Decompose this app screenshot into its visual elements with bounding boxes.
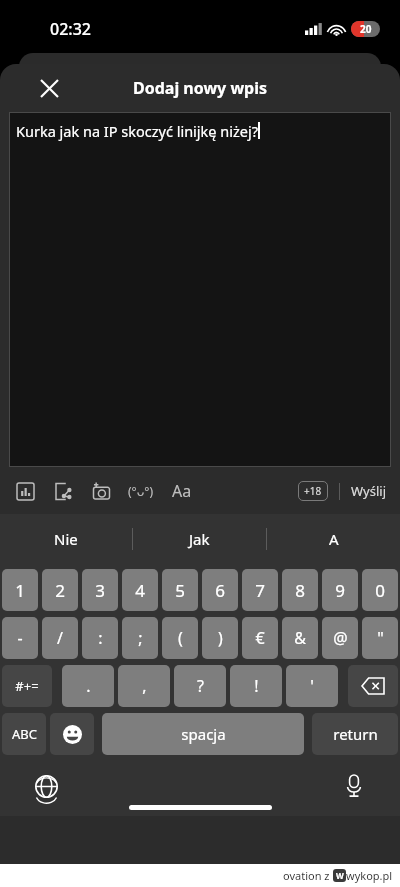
button[interactable]: Emoji [50, 713, 94, 755]
staticText: 8 [295, 579, 305, 602]
button[interactable]: € [242, 617, 278, 659]
button[interactable]: 7 [242, 569, 278, 611]
staticText: ' [310, 675, 314, 697]
button[interactable]: ? [174, 665, 226, 707]
staticText: 2 [55, 579, 65, 602]
staticText: 20 [360, 22, 372, 36]
button[interactable]: : [82, 617, 118, 659]
staticText: Aa [172, 480, 192, 502]
button[interactable]: ; [122, 617, 158, 659]
staticText: 7 [255, 579, 265, 602]
staticText: W [336, 870, 344, 881]
button[interactable]: Nie [0, 514, 132, 564]
button[interactable]: (°ᴗ°) [124, 480, 158, 502]
button[interactable]: @ [322, 617, 358, 659]
button[interactable]: Aparat [89, 479, 113, 503]
button[interactable]: , [118, 665, 170, 707]
button[interactable]: Dyktowanie [336, 768, 372, 804]
button[interactable]: +18 [298, 481, 328, 501]
staticText: 0 [375, 579, 385, 602]
button[interactable]: / [42, 617, 78, 659]
staticText: ( [178, 627, 183, 649]
staticText: 4 [135, 579, 145, 602]
button[interactable]: Kurka jak na IP skoczyć linijkę niżej? [9, 112, 391, 467]
button[interactable]: ( [162, 617, 198, 659]
button[interactable]: & [282, 617, 318, 659]
button[interactable]: ABC [2, 713, 46, 755]
button[interactable]: #+= [2, 665, 52, 707]
staticText: ? [197, 675, 204, 697]
button[interactable]: . [62, 665, 114, 707]
staticText: 1 [15, 579, 25, 602]
staticText: spacja [181, 724, 226, 744]
staticText: . [86, 675, 91, 697]
staticText: Nie [54, 529, 78, 549]
button[interactable]: Aa [169, 480, 195, 502]
button[interactable]: 2 [42, 569, 78, 611]
button[interactable]: 9 [322, 569, 358, 611]
button[interactable]: Ankieta [13, 479, 37, 503]
button[interactable]: Jak [133, 514, 266, 564]
staticText: +18 [304, 484, 322, 498]
button[interactable]: Backspace [348, 665, 398, 707]
button[interactable]: 8 [282, 569, 318, 611]
staticText: Wyślij [351, 482, 387, 500]
button[interactable]: " [362, 617, 398, 659]
staticText: @ [333, 627, 348, 649]
button[interactable]: Udostępnij [51, 479, 75, 503]
staticText: 6 [215, 579, 225, 602]
staticText: , [142, 675, 147, 697]
button[interactable]: 6 [202, 569, 238, 611]
staticText: Dodaj nowy wpis [133, 77, 268, 99]
button[interactable]: ! [230, 665, 282, 707]
button[interactable]: ' [286, 665, 338, 707]
staticText: ! [254, 675, 259, 697]
button[interactable]: Zmień język [28, 768, 64, 804]
staticText: ovation z [283, 868, 333, 883]
button[interactable]: 0 [362, 569, 398, 611]
staticText: / [57, 627, 63, 649]
button[interactable]: spacja [102, 713, 304, 755]
button[interactable]: 5 [162, 569, 198, 611]
staticText: 5 [175, 579, 185, 602]
staticText: 3 [95, 579, 105, 602]
staticText: A [329, 529, 339, 549]
staticText: Jak [189, 529, 210, 549]
staticText: : [98, 627, 103, 649]
button[interactable]: 3 [82, 569, 118, 611]
staticText: wykop.pl [346, 868, 393, 883]
staticText: & [294, 627, 306, 649]
staticText: ; [138, 627, 143, 649]
button[interactable]: - [2, 617, 38, 659]
staticText: return [333, 724, 378, 744]
staticText: " [377, 627, 384, 649]
staticText: ABC [12, 725, 37, 743]
button[interactable]: Wyślij [351, 482, 387, 500]
staticText: Kurka jak na IP skoczyć linijkę niżej? [16, 121, 258, 141]
button[interactable]: return [312, 713, 398, 755]
button[interactable]: A [267, 514, 400, 564]
staticText: - [17, 627, 23, 649]
staticText: € [255, 627, 265, 649]
staticText: ) [218, 627, 223, 649]
staticText: 02:32 [50, 18, 91, 40]
button[interactable]: Zamknij [34, 73, 64, 103]
button[interactable]: 1 [2, 569, 38, 611]
button[interactable]: 4 [122, 569, 158, 611]
button[interactable]: ) [202, 617, 238, 659]
staticText: (°ᴗ°) [128, 483, 154, 499]
staticText: #+= [15, 677, 39, 695]
staticText: 9 [335, 579, 345, 602]
